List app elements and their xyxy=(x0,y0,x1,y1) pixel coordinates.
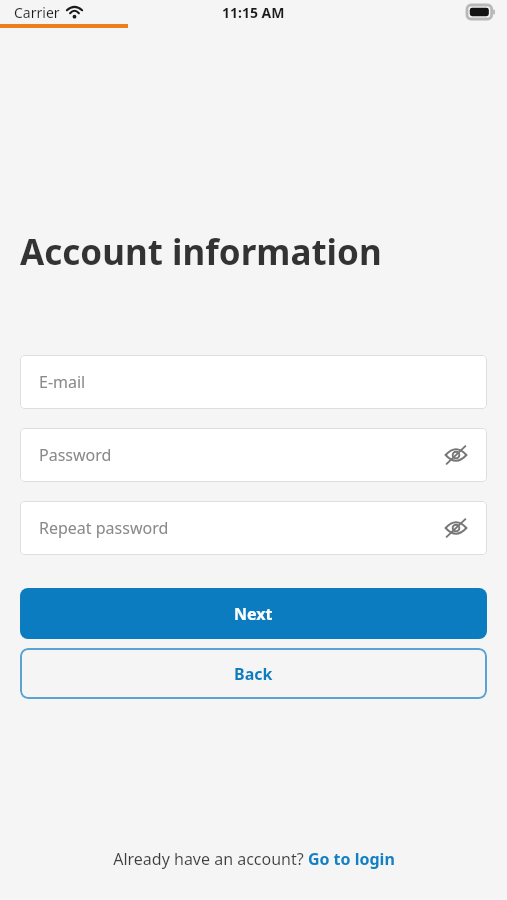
staticText: Already have an account? Go to login xyxy=(113,848,395,870)
button[interactable]: Repeat password xyxy=(20,501,487,555)
staticText: Account information xyxy=(20,228,382,276)
button[interactable]: Next xyxy=(20,588,487,639)
staticText: Carrier xyxy=(14,3,60,22)
button[interactable]: Password xyxy=(20,428,487,482)
button[interactable]: Back xyxy=(20,648,487,699)
button[interactable]: Already have an account? Go to login xyxy=(105,846,403,872)
button[interactable]: Show password xyxy=(439,511,473,545)
staticText: 11:15 AM xyxy=(222,3,285,22)
staticText: Back xyxy=(234,663,273,685)
staticText: E-mail xyxy=(39,371,86,393)
staticText: Next xyxy=(234,603,273,625)
button[interactable]: E-mail xyxy=(20,355,487,409)
button[interactable]: Show password xyxy=(439,438,473,472)
staticText: Password xyxy=(39,444,112,466)
staticText: Repeat password xyxy=(39,517,169,539)
